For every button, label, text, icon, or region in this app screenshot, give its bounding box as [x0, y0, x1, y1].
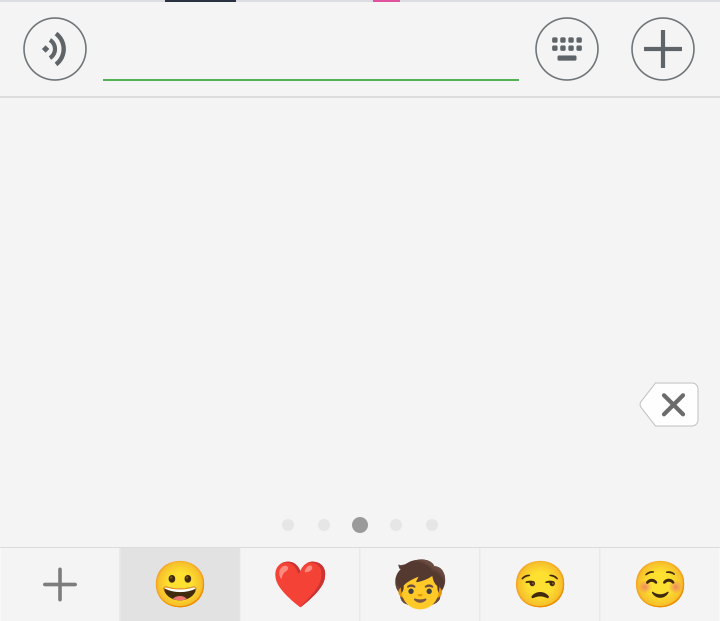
staticText: 😀 [152, 559, 208, 610]
button[interactable] [0, 548, 119, 621]
staticText: 😒 [512, 559, 568, 610]
button[interactable]: 😀 [120, 548, 239, 621]
staticText: ❤️ [272, 559, 328, 610]
button[interactable]: Add [632, 18, 694, 80]
button[interactable]: Voice message [24, 18, 86, 80]
button[interactable]: 😒 [480, 548, 599, 621]
button[interactable]: Delete [638, 383, 698, 426]
button[interactable]: Keyboard [536, 18, 598, 80]
button[interactable]: ☺️ [600, 548, 719, 621]
button[interactable]: ❤️ [240, 548, 359, 621]
button[interactable]: 🧒 [360, 548, 479, 621]
staticText: ☺️ [632, 559, 688, 610]
staticText: 🧒 [392, 559, 448, 610]
